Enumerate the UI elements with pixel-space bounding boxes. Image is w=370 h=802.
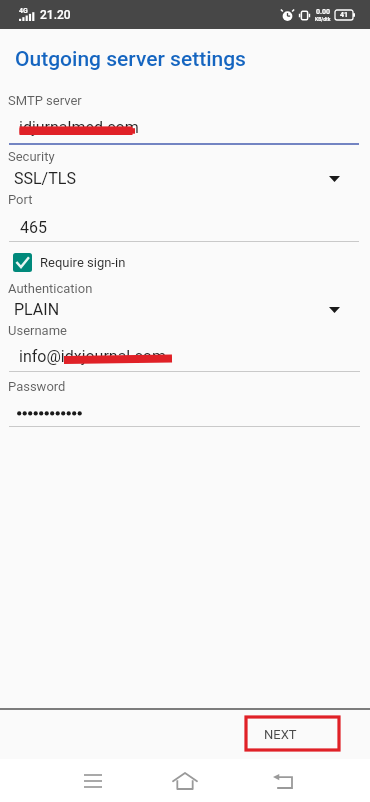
- staticText: SMTP server: [8, 93, 82, 108]
- staticText: KB/dtk: [315, 16, 331, 22]
- staticText: 21.20: [40, 8, 71, 22]
- button[interactable]: Recent apps: [69, 759, 117, 802]
- staticText: Password: [8, 379, 66, 394]
- button[interactable]: SSL/TLS: [0, 165, 370, 191]
- button[interactable]: Require sign-in: [8, 248, 148, 277]
- staticText: Outgoing server settings: [15, 47, 246, 72]
- button[interactable]: Back: [258, 759, 306, 802]
- button[interactable]: NEXT: [249, 718, 337, 749]
- staticText: NEXT: [264, 727, 297, 742]
- staticText: Security: [8, 149, 55, 164]
- button[interactable]: Home: [161, 759, 209, 802]
- staticText: 4G: [19, 7, 28, 15]
- staticText: idjurnalmed.com: [19, 118, 139, 137]
- staticText: Username: [8, 323, 67, 338]
- staticText: Port: [8, 192, 33, 207]
- staticText: SSL/TLS: [14, 169, 76, 188]
- staticText: 465: [20, 218, 47, 237]
- staticText: Authentication: [8, 281, 93, 296]
- staticText: 41: [340, 11, 349, 19]
- staticText: 0.00: [316, 8, 331, 16]
- staticText: PLAIN: [14, 300, 60, 319]
- button[interactable]: PLAIN: [0, 296, 370, 322]
- staticText: Require sign-in: [40, 255, 126, 270]
- staticText: info@idxjournal.com: [19, 347, 167, 366]
